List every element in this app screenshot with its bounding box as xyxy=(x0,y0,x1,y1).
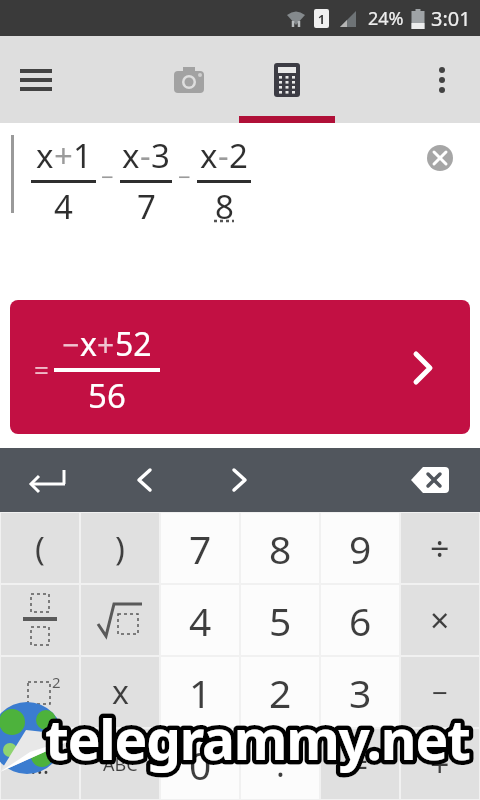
button[interactable] xyxy=(120,456,168,504)
staticText: 0 xyxy=(189,738,212,791)
button[interactable] xyxy=(263,56,311,104)
button[interactable]: 6 xyxy=(321,585,399,655)
button[interactable]: 2 xyxy=(1,657,79,727)
staticText: telegrammy.net xyxy=(45,701,470,776)
staticText: − xyxy=(432,673,449,711)
button[interactable]: 3 xyxy=(321,657,399,727)
staticText: 1 xyxy=(73,133,92,178)
staticText: 24% xyxy=(368,6,404,31)
staticText: − xyxy=(62,324,80,365)
staticText: − xyxy=(101,161,114,191)
button[interactable] xyxy=(216,456,264,504)
button[interactable]: 2 xyxy=(241,657,319,727)
button[interactable]: x xyxy=(81,657,159,727)
button[interactable]: ... xyxy=(1,729,79,799)
staticText: + xyxy=(54,133,73,178)
staticText: 8 xyxy=(269,522,292,575)
staticText: 2 xyxy=(269,666,292,719)
staticText: 1 xyxy=(318,11,325,27)
staticText: 1 xyxy=(189,666,212,719)
staticText: x xyxy=(36,133,54,178)
button[interactable]: + xyxy=(401,729,479,799)
staticText: ABC xyxy=(103,752,138,777)
staticText: 4 xyxy=(189,594,212,647)
staticText: . xyxy=(276,742,285,787)
staticText: 8 xyxy=(215,184,234,219)
staticText: 2 xyxy=(52,672,61,692)
staticText: ... xyxy=(30,748,50,781)
staticText: x xyxy=(122,133,140,178)
button[interactable] xyxy=(427,145,453,171)
staticText: x xyxy=(80,322,97,366)
staticText: 6 xyxy=(349,594,372,647)
staticText: + xyxy=(97,324,115,365)
button[interactable]: . xyxy=(241,729,319,799)
button[interactable] xyxy=(406,456,454,504)
button[interactable]: = xyxy=(10,300,470,434)
button[interactable]: ( xyxy=(1,513,79,583)
button[interactable]: 1 xyxy=(161,657,239,727)
staticText: + xyxy=(430,741,450,787)
staticText: ÷ xyxy=(430,525,450,571)
staticText: 3:01 xyxy=(431,5,471,32)
staticText: x xyxy=(200,133,218,178)
staticText: = xyxy=(351,744,369,785)
staticText: 5 xyxy=(269,594,292,647)
button[interactable]: × xyxy=(401,585,479,655)
button[interactable] xyxy=(24,456,72,504)
button[interactable]: 0 xyxy=(161,729,239,799)
staticText: 7 xyxy=(189,522,212,575)
staticText: ( xyxy=(35,526,45,571)
button[interactable] xyxy=(12,56,60,104)
button[interactable] xyxy=(422,60,462,100)
button[interactable]: 8 xyxy=(241,513,319,583)
button[interactable]: 5 xyxy=(241,585,319,655)
button[interactable]: 4 xyxy=(161,585,239,655)
staticText: 7 xyxy=(137,184,156,219)
button[interactable]: ) xyxy=(81,513,159,583)
staticText: − xyxy=(178,161,191,191)
button[interactable]: 7 xyxy=(161,513,239,583)
staticText: 9 xyxy=(349,522,372,575)
staticText: 2 xyxy=(229,133,248,178)
button[interactable]: ÷ xyxy=(401,513,479,583)
staticText: - xyxy=(140,133,151,178)
button[interactable] xyxy=(1,585,79,655)
staticText: x xyxy=(112,670,129,714)
staticText: telegrammy.net xyxy=(45,701,470,776)
staticText: 56 xyxy=(88,373,126,418)
staticText: ) xyxy=(115,526,125,571)
staticText: 3 xyxy=(151,133,170,178)
staticText: - xyxy=(218,133,229,178)
button[interactable]: − xyxy=(401,657,479,727)
button[interactable]: 9 xyxy=(321,513,399,583)
staticText: 3 xyxy=(349,666,372,719)
button[interactable] xyxy=(166,56,214,104)
staticText: 4 xyxy=(54,184,73,219)
button[interactable]: ABC xyxy=(81,729,159,799)
button[interactable] xyxy=(81,585,159,655)
staticText: = xyxy=(34,352,49,387)
button[interactable]: = xyxy=(321,729,399,799)
staticText: × xyxy=(430,597,450,643)
staticText: 52 xyxy=(115,322,152,366)
